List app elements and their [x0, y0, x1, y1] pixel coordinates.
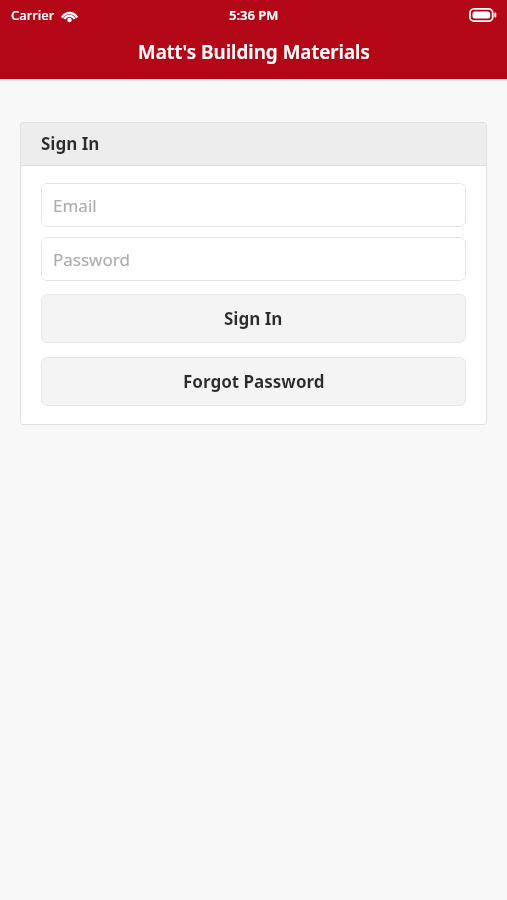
button[interactable]: Forgot Password	[41, 357, 466, 406]
staticText: Forgot Password	[183, 370, 325, 393]
button[interactable]: Password	[41, 237, 466, 281]
staticText: Password	[53, 248, 130, 271]
other: Wi-Fi signal	[61, 9, 78, 22]
staticText: 5:36 PM	[229, 6, 279, 24]
staticText: Matt's Building Materials	[138, 39, 370, 65]
staticText: Email	[53, 194, 97, 217]
other: Battery full	[469, 8, 497, 22]
button[interactable]: Email	[41, 183, 466, 227]
staticText: Carrier	[11, 6, 55, 24]
staticText: Sign In	[224, 307, 283, 330]
staticText: Sign In	[41, 132, 100, 155]
button[interactable]: Sign In	[41, 294, 466, 343]
